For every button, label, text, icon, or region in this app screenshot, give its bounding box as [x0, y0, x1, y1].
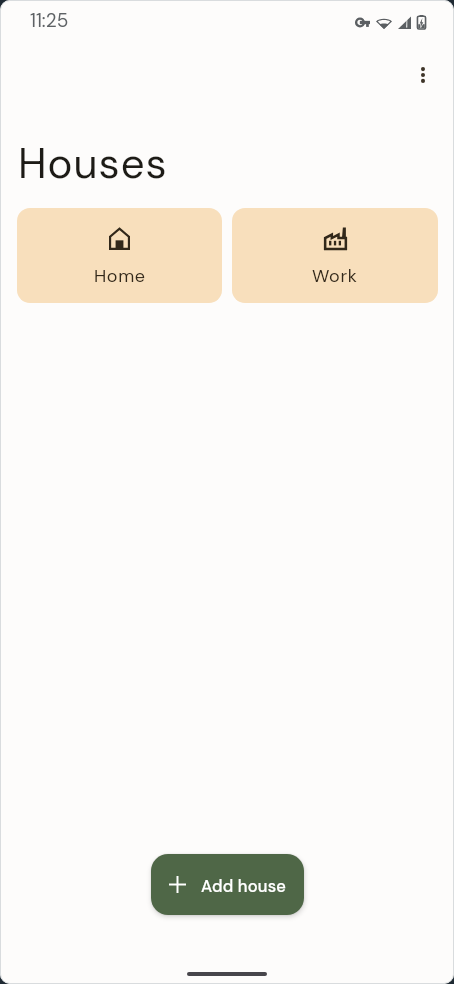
button[interactable]: Home	[17, 208, 222, 303]
button[interactable]: Add house	[151, 854, 304, 915]
staticText: Work	[312, 264, 358, 287]
button[interactable]: Work	[232, 208, 438, 303]
staticText: Home	[94, 264, 146, 287]
staticText: Houses	[18, 136, 168, 191]
button[interactable]: More options	[399, 51, 447, 99]
staticText: 11:25	[30, 8, 69, 33]
staticText: Add house	[201, 876, 287, 897]
